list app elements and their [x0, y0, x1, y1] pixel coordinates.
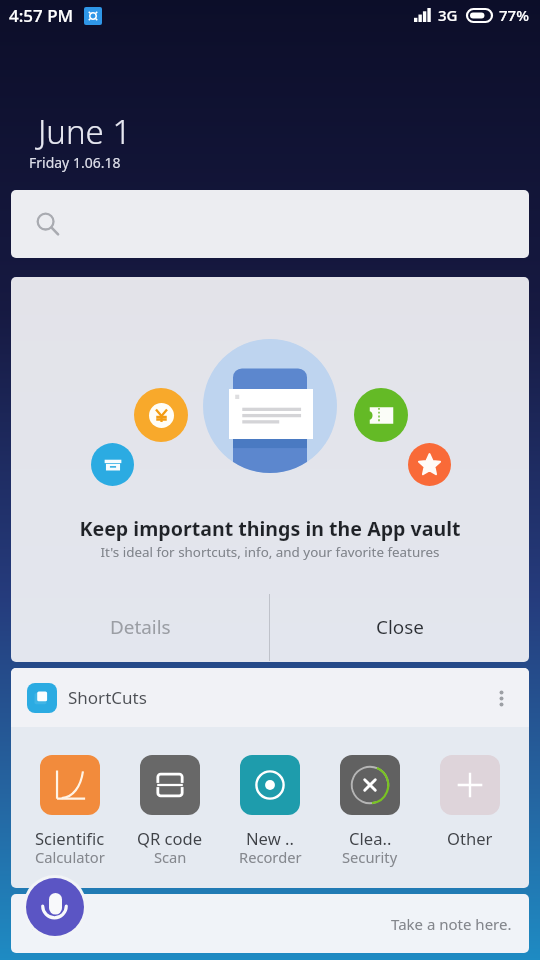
staticText: It's ideal for shortcuts, info, and your… — [11, 543, 529, 561]
button[interactable]: QR code — [120, 727, 220, 888]
staticText: New .. — [246, 827, 294, 850]
staticText: 77% — [499, 5, 529, 25]
staticText: Friday 1.06.18 — [29, 153, 121, 172]
button[interactable]: Details — [11, 587, 269, 662]
staticText: Recorder — [239, 847, 302, 867]
staticText: QR code — [137, 827, 203, 850]
button[interactable]: Scientific — [20, 727, 120, 888]
staticText: Notes — [31, 912, 79, 935]
button[interactable]: Notes — [11, 894, 529, 953]
button[interactable]: New .. — [220, 727, 320, 888]
staticText: ShortCuts — [68, 686, 147, 709]
staticText: 4:57 PM — [9, 4, 74, 27]
staticText: June 1 — [38, 109, 132, 154]
staticText: 3G — [438, 5, 458, 25]
staticText: Scientific — [35, 827, 105, 850]
button[interactable]: Voice assistant — [26, 878, 84, 936]
staticText: Clea.. — [349, 827, 392, 850]
staticText: Calculator — [35, 847, 105, 867]
staticText: Take a note here. — [391, 914, 512, 934]
staticText: Other — [447, 827, 493, 850]
button[interactable]: Clea.. — [320, 727, 420, 888]
staticText: Security — [342, 847, 398, 867]
button[interactable]: More options — [487, 684, 515, 712]
staticText: Details — [110, 614, 171, 640]
button[interactable]: Close — [270, 587, 529, 662]
staticText: Scan — [154, 847, 187, 867]
button[interactable]: Search — [11, 190, 529, 258]
staticText: Close — [376, 614, 424, 640]
button[interactable]: Other — [420, 727, 520, 888]
staticText: Keep important things in the App vault — [11, 515, 529, 542]
